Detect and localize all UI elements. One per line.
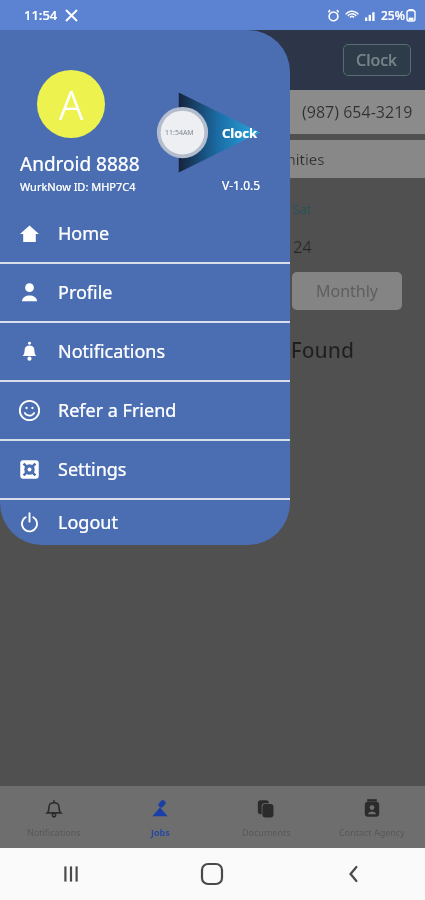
button[interactable]: Recents bbox=[49, 852, 93, 896]
button[interactable]: Notifications bbox=[0, 323, 290, 380]
button[interactable]: Documents bbox=[213, 786, 319, 848]
staticText: (987) 654-3219 bbox=[302, 101, 413, 123]
button[interactable]: Contact Agency bbox=[319, 786, 425, 848]
button[interactable]: Back bbox=[332, 852, 376, 896]
button[interactable]: Jobs bbox=[107, 786, 213, 848]
staticText: Profile bbox=[58, 280, 113, 305]
staticText: Refer a Friend bbox=[58, 398, 177, 423]
button[interactable]: Clock bbox=[343, 44, 411, 76]
staticText: Clock bbox=[222, 124, 258, 142]
button[interactable]: Home bbox=[0, 205, 290, 262]
button[interactable]: Settings bbox=[0, 441, 290, 498]
staticText: Sat bbox=[292, 200, 312, 218]
staticText: Monthly bbox=[316, 280, 379, 302]
staticText: V-1.0.5 bbox=[222, 177, 261, 193]
staticText: Not Found bbox=[248, 336, 354, 365]
button[interactable]: Notifications bbox=[0, 786, 107, 848]
staticText: Android 8888 bbox=[20, 151, 140, 177]
button[interactable]: Refer a Friend bbox=[0, 382, 290, 439]
staticText: Settings bbox=[58, 457, 127, 482]
staticText: 24 bbox=[293, 236, 312, 258]
button[interactable]: Logout bbox=[0, 500, 290, 545]
button[interactable]: Monthly bbox=[292, 272, 402, 310]
staticText: 11:54AM bbox=[165, 128, 194, 138]
button[interactable]: Profile bbox=[0, 264, 290, 321]
staticText: Notifications bbox=[58, 339, 166, 364]
staticText: 25% bbox=[381, 7, 405, 23]
staticText: Documents bbox=[242, 826, 291, 838]
staticText: Logout bbox=[58, 510, 118, 535]
staticText: 11:54 bbox=[24, 6, 58, 24]
staticText: Home bbox=[58, 221, 110, 246]
staticText: WurkNow ID: MHP7C4 bbox=[20, 179, 136, 194]
staticText: Notifications bbox=[27, 826, 81, 838]
button[interactable]: Home bbox=[190, 852, 234, 896]
staticText: Clock bbox=[356, 49, 398, 71]
staticText: Contact Agency bbox=[339, 826, 405, 838]
button[interactable]: Profile avatar bbox=[37, 70, 105, 138]
staticText: Job Opportunities bbox=[200, 149, 325, 169]
staticText: A bbox=[59, 77, 84, 131]
staticText: Jobs bbox=[151, 826, 170, 838]
